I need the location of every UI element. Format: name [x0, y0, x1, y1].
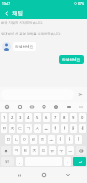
button[interactable]: , — [16, 157, 23, 166]
button[interactable]: Clipboard — [26, 102, 37, 112]
staticText: 5 — [36, 115, 39, 121]
staticText: 안녕하세요 — [62, 57, 81, 62]
button[interactable]: ㅌ — [22, 146, 29, 155]
button[interactable]: 5 — [34, 113, 41, 122]
button[interactable]: 6 — [43, 113, 50, 122]
button[interactable]: 안녕하세요 — [13, 42, 36, 51]
button[interactable]: Translate — [63, 102, 74, 112]
button[interactable]: ㄷ — [17, 124, 23, 133]
button[interactable]: ㅠ — [49, 146, 56, 155]
button[interactable]: Enter — [73, 157, 86, 166]
button[interactable]: Recent apps — [13, 169, 25, 181]
button[interactable]: Emoji — [1, 102, 12, 112]
button[interactable]: ㅗ — [48, 135, 55, 144]
staticText: 2 — [11, 115, 14, 121]
button[interactable]: ㅣ — [75, 135, 82, 144]
staticText: 87% — [78, 2, 85, 6]
staticText: ㅗ — [49, 137, 54, 143]
button[interactable]: Voice input — [38, 102, 49, 112]
button[interactable]: ㅡ — [67, 146, 74, 155]
staticText: ㅍ — [41, 148, 46, 154]
button[interactable]: Settings — [50, 102, 61, 112]
staticText: ㅛ — [44, 126, 49, 132]
staticText: 6 — [45, 115, 48, 121]
button[interactable]: More options — [75, 102, 86, 112]
button[interactable]: ㄴ — [13, 135, 19, 144]
staticText: 10:47 — [2, 2, 10, 6]
staticText: , — [19, 159, 20, 164]
button[interactable]: 7 — [52, 113, 59, 122]
staticText: ㅠ — [50, 148, 55, 154]
staticText: ㅑ — [62, 126, 67, 132]
button[interactable]: Stickers — [14, 102, 25, 112]
button[interactable]: ㅏ — [66, 135, 73, 144]
button[interactable]: ㅐ — [70, 124, 77, 133]
button[interactable]: 3 — [17, 113, 23, 122]
button[interactable]: ㅁ — [5, 135, 11, 144]
staticText: ㄹ — [31, 137, 36, 143]
button[interactable]: ㅋ — [13, 146, 20, 155]
button[interactable]: Send — [74, 89, 87, 100]
staticText: 8 — [63, 115, 66, 121]
button[interactable]: ㅕ — [52, 124, 59, 133]
button[interactable]: ㅈ — [9, 124, 15, 133]
staticText: ㅁ — [6, 137, 11, 143]
button[interactable]: ㅔ — [79, 124, 86, 133]
button[interactable]: 2 — [9, 113, 15, 122]
staticText: ㅣ — [76, 137, 81, 143]
staticText: ㅔ — [80, 126, 85, 132]
staticText: ㅂ — [2, 126, 7, 132]
button[interactable]: ㅂ — [1, 124, 7, 133]
staticText: ㅕ — [53, 126, 58, 132]
staticText: ㅈ — [10, 126, 15, 132]
button[interactable]: . — [64, 157, 71, 166]
button[interactable]: ㄹ — [30, 135, 37, 144]
staticText: ㅌ — [23, 148, 28, 154]
button[interactable]: 0 — [79, 113, 86, 122]
staticText: ㄴ — [14, 137, 19, 143]
button[interactable]: ㅅ — [34, 124, 41, 133]
button[interactable]: ㅑ — [61, 124, 68, 133]
button[interactable]: Back — [62, 169, 74, 181]
staticText: ㅏ — [67, 137, 72, 143]
staticText: ㄷ — [18, 126, 23, 132]
button[interactable]: 8 — [61, 113, 68, 122]
staticText: 1 — [3, 115, 6, 121]
staticText: !#1 — [5, 160, 10, 164]
staticText: 채팅 — [12, 10, 24, 17]
button[interactable]: Home — [38, 169, 50, 181]
button[interactable]: ㅇ — [21, 135, 28, 144]
button[interactable]: ㅓ — [57, 135, 64, 144]
button[interactable]: 4 — [25, 113, 32, 122]
button[interactable]: ㅊ — [31, 146, 38, 155]
staticText: 7 — [54, 115, 57, 121]
button[interactable]: Back — [0, 7, 12, 19]
staticText: ㅓ — [58, 137, 63, 143]
button[interactable]: ㅛ — [43, 124, 50, 133]
button[interactable]: ㅍ — [40, 146, 47, 155]
staticText: ㅜ — [59, 148, 64, 154]
button[interactable]: ㅎ — [39, 135, 46, 144]
staticText: 4 — [27, 115, 30, 121]
staticText: 상대방이 서 운영 정책을 수정하였습니다. — [1, 31, 85, 36]
button[interactable]: 안녕하세요 — [59, 55, 84, 64]
staticText: ㅡ — [68, 148, 73, 154]
staticText: ㅐ — [71, 126, 76, 132]
staticText: ㅇ — [22, 137, 27, 143]
staticText: ㅊ — [32, 148, 37, 154]
staticText: . — [67, 159, 68, 164]
staticText: 한국 지점의 시작되었습니다. — [1, 20, 85, 25]
staticText: ㄱ — [26, 126, 31, 132]
button[interactable]: ㄱ — [25, 124, 32, 133]
button[interactable]: Backspace — [76, 146, 86, 155]
staticText: 9 — [72, 115, 75, 121]
button[interactable]: ㅜ — [58, 146, 65, 155]
staticText: ㅅ — [35, 126, 40, 132]
button[interactable]: !#1 — [1, 157, 14, 166]
button[interactable]: 1 — [1, 113, 7, 122]
button[interactable]: Shift — [1, 146, 11, 155]
staticText: 안녕하세요 — [15, 44, 34, 49]
button[interactable]: 9 — [70, 113, 77, 122]
